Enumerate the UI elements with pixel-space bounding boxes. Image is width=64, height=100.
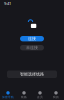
button[interactable]: 线路 (16, 91, 32, 99)
staticText: 智能选择线路 (20, 72, 44, 77)
button[interactable]: 智能选择线路 (7, 70, 57, 78)
staticText: 连接 (28, 36, 36, 41)
button[interactable]: 会员 (32, 91, 48, 99)
button[interactable]: 加密导航 (0, 91, 16, 99)
staticText: 线路 (21, 96, 27, 99)
staticText: 我的 (53, 96, 59, 99)
button[interactable]: 未连接 (20, 45, 44, 50)
staticText: 加密导航 (2, 96, 14, 99)
staticText: 9:41 (4, 1, 11, 6)
button[interactable]: 连接 (20, 36, 44, 41)
staticText: 会员 (37, 96, 43, 99)
staticText: 未连接 (26, 45, 38, 50)
button[interactable]: 我的 (48, 91, 64, 99)
